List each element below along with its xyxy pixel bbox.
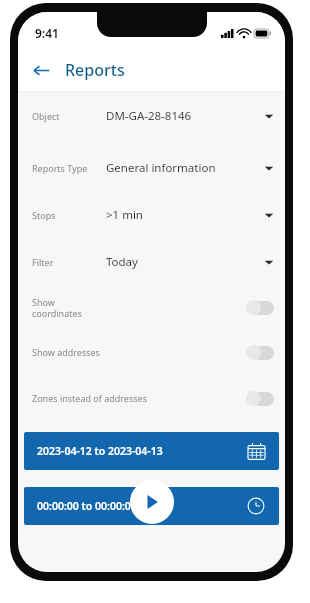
staticText: Reports <box>65 59 125 81</box>
staticText: 00:00:00 to 00:00:00 <box>37 499 137 513</box>
button[interactable]: Stops <box>18 200 285 230</box>
staticText: Object <box>32 110 106 122</box>
button[interactable]: Object <box>18 101 285 131</box>
staticText: Filter <box>32 256 106 268</box>
button[interactable]: 2023-04-12 to 2023-04-13 <box>24 432 279 470</box>
button[interactable]: Show addresses <box>18 336 285 368</box>
button[interactable]: Filter <box>18 247 285 277</box>
staticText: General information <box>106 160 264 176</box>
button[interactable]: Back <box>24 53 58 87</box>
staticText: DM-GA-28-8146 <box>106 108 264 124</box>
staticText: Today <box>106 254 264 270</box>
button[interactable]: Show coordinates <box>18 291 285 323</box>
staticText: >1 min <box>106 207 264 223</box>
button[interactable]: 00:00:00 to 00:00:00 <box>24 487 279 525</box>
staticText: Reports Type <box>32 162 106 174</box>
button[interactable]: Reports Type <box>18 153 285 183</box>
staticText: Stops <box>32 209 106 221</box>
staticText: Zones instead of addresses <box>32 392 246 404</box>
staticText: 2023-04-12 to 2023-04-13 <box>37 444 163 458</box>
staticText: Show coordinates <box>32 296 246 319</box>
button[interactable]: Zones instead of addresses <box>18 382 285 414</box>
staticText: Show addresses <box>32 346 246 358</box>
button[interactable]: Run report <box>130 480 174 524</box>
staticText: 9:41 <box>35 25 59 41</box>
